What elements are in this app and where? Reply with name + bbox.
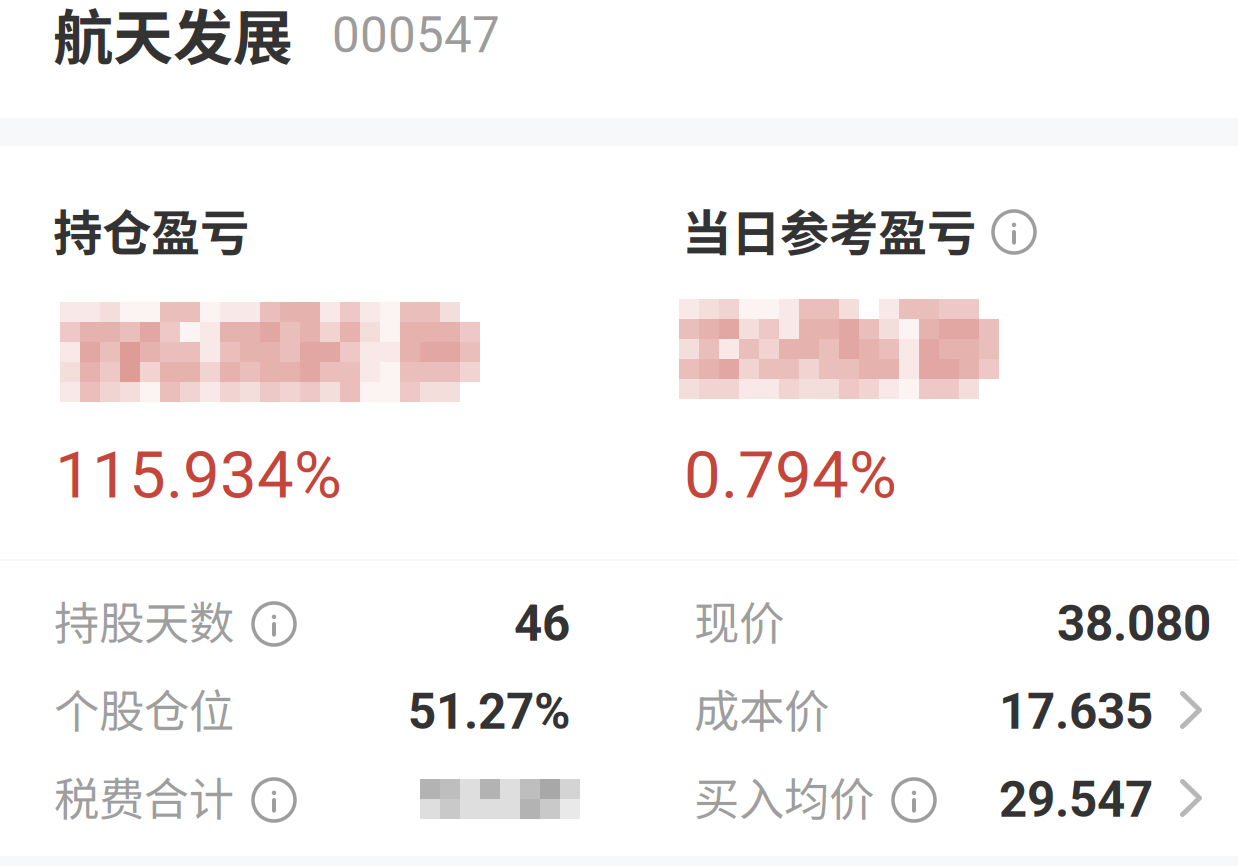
staticText: 持仓盈亏 bbox=[53, 194, 249, 265]
button[interactable]: 持股天数 bbox=[54, 576, 570, 664]
button[interactable]: 当日参考盈亏说明 bbox=[989, 207, 1039, 257]
staticText: 0.794% bbox=[684, 437, 897, 514]
button[interactable]: 个股仓位 bbox=[54, 664, 570, 752]
staticText: 税费合计 bbox=[54, 763, 234, 829]
staticText: 38.080 bbox=[1057, 595, 1211, 653]
staticText: 当日参考盈亏 bbox=[682, 194, 976, 265]
staticText: 成本价 bbox=[694, 675, 829, 741]
staticText: 现价 bbox=[694, 587, 784, 653]
staticText: 航天发展 bbox=[53, 0, 293, 77]
staticText: 持股天数 bbox=[54, 587, 234, 653]
staticText: 51.27% bbox=[408, 683, 570, 741]
staticText: 买入均价 bbox=[694, 763, 874, 829]
button[interactable]: 现价 bbox=[694, 576, 1211, 664]
button[interactable]: 成本价 bbox=[694, 664, 1202, 752]
button[interactable]: 税费合计 bbox=[54, 752, 580, 840]
staticText: 17.635 bbox=[999, 683, 1153, 741]
button[interactable]: 买入均价 bbox=[694, 752, 1202, 840]
staticText: 个股仓位 bbox=[54, 675, 234, 741]
button[interactable]: 航天发展 bbox=[53, 0, 1238, 118]
staticText: 29.547 bbox=[999, 771, 1153, 829]
staticText: 000547 bbox=[332, 6, 500, 64]
staticText: 46 bbox=[514, 595, 570, 653]
staticText: 115.934% bbox=[55, 437, 342, 514]
